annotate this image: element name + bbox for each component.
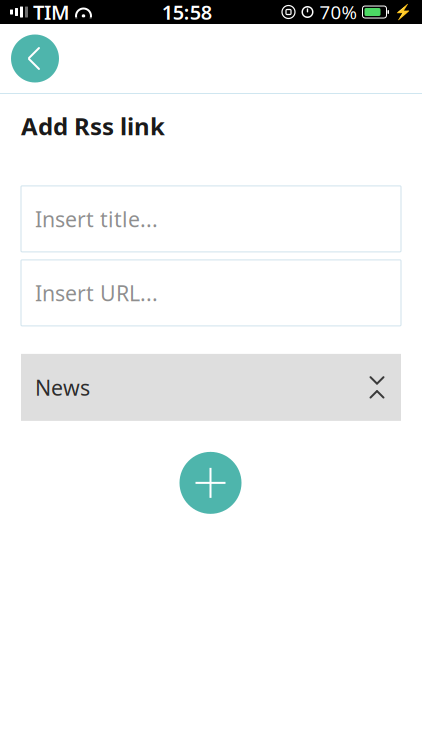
staticText: News xyxy=(35,373,90,401)
button[interactable]: Back xyxy=(11,34,59,82)
button[interactable]: Insert URL... xyxy=(21,260,401,326)
staticText: Add Rss link xyxy=(21,110,165,142)
staticText: 70% xyxy=(319,0,357,24)
button[interactable]: News xyxy=(21,354,401,421)
button[interactable]: Add xyxy=(179,452,241,514)
staticText: Insert title... xyxy=(35,205,158,233)
staticText: Insert URL... xyxy=(35,279,158,307)
staticText: ⚡ xyxy=(394,4,412,20)
staticText: 15:58 xyxy=(162,0,212,25)
button[interactable]: Insert title... xyxy=(21,186,401,252)
staticText: TIM xyxy=(33,0,70,25)
